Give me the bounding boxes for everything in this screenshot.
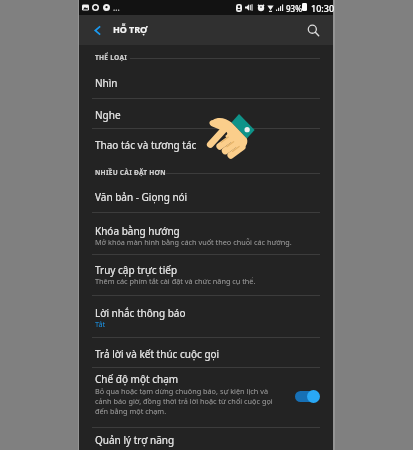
button[interactable]: Truy cập trực tiếp [79, 255, 333, 295]
button[interactable]: Chế độ một chạm [79, 368, 333, 429]
staticText: Nghe [95, 108, 121, 122]
button[interactable]: Back [86, 19, 108, 41]
staticText: 10:30 [311, 2, 335, 14]
button[interactable]: Nhìn [79, 67, 333, 98]
button[interactable]: Thao tác và tương tác [79, 129, 333, 159]
staticText: Lời nhắc thông báo [95, 306, 186, 320]
staticText: Bỏ qua hoặc tạm dừng chuông báo, sự kiện… [95, 386, 275, 416]
staticText: NHIỀU CÀI ĐẶT HƠN [95, 168, 166, 177]
button[interactable]: Nghe [79, 99, 333, 129]
staticText: ... [113, 2, 120, 13]
staticText: Thao tác và tương tác [95, 138, 197, 152]
button[interactable]: Search [302, 19, 324, 41]
staticText: Nhìn [95, 76, 118, 90]
staticText: Quản lý trợ năng [95, 433, 175, 447]
staticText: 93% [286, 3, 302, 14]
staticText: Tắt [95, 319, 317, 329]
staticText: Khóa bằng hướng [95, 224, 180, 238]
staticText: Trả lời và kết thúc cuộc gọi [95, 347, 220, 361]
staticText: Văn bản - Giọng nói [95, 190, 188, 204]
staticText: Truy cập trực tiếp [95, 263, 178, 277]
staticText: Thêm các phím tắt cài đặt và chức năng c… [95, 276, 317, 286]
button[interactable]: Quản lý trợ năng [79, 428, 333, 450]
staticText: Mở khóa màn hình bằng cách vuốt theo chu… [95, 237, 317, 247]
staticText: HỖ TRỢ [113, 23, 148, 35]
button[interactable]: Văn bản - Giọng nói [79, 181, 333, 212]
button[interactable]: Lời nhắc thông báo [79, 296, 333, 337]
staticText: THỂ LOẠI [95, 53, 128, 62]
button[interactable]: Khóa bằng hướng [79, 213, 333, 254]
staticText: Chế độ một chạm [95, 372, 179, 386]
button[interactable]: Trả lời và kết thúc cuộc gọi [79, 338, 333, 367]
